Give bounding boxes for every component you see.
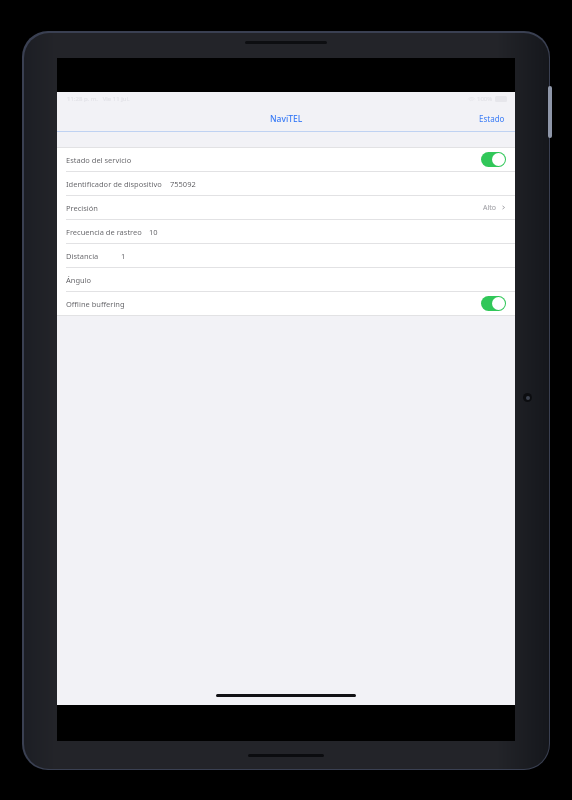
staticText: NaviTEL xyxy=(270,113,303,125)
button[interactable]: Ángulo xyxy=(57,268,515,291)
staticText: 10 xyxy=(149,227,158,237)
staticText: 1 xyxy=(121,251,126,261)
button[interactable]: Toggle xyxy=(481,296,506,311)
staticText: Ángulo xyxy=(66,275,92,285)
staticText: 100% xyxy=(477,95,493,103)
staticText: Estado xyxy=(479,113,505,124)
button[interactable]: Distancia xyxy=(57,244,515,267)
staticText: Precisión xyxy=(66,203,98,213)
button[interactable]: Precisión xyxy=(57,196,515,219)
staticText: 755092 xyxy=(170,179,196,189)
staticText: Alto xyxy=(483,203,497,213)
button[interactable]: Offline buffering xyxy=(57,292,515,315)
button[interactable]: Toggle xyxy=(481,152,506,167)
staticText: 11:28 p. m. Vie 11 jul. xyxy=(67,95,130,103)
button[interactable]: Frecuencia de rastreo xyxy=(57,220,515,243)
staticText: Frecuencia de rastreo xyxy=(66,227,142,237)
staticText: Estado del servicio xyxy=(66,155,132,165)
staticText: Offline buffering xyxy=(66,299,125,309)
staticText: Identificador de dispositivo xyxy=(66,179,162,189)
button[interactable]: Estado xyxy=(469,109,515,128)
button[interactable]: Estado del servicio xyxy=(57,148,515,171)
staticText: Distancia xyxy=(66,251,99,261)
button[interactable]: Identificador de dispositivo xyxy=(57,172,515,195)
